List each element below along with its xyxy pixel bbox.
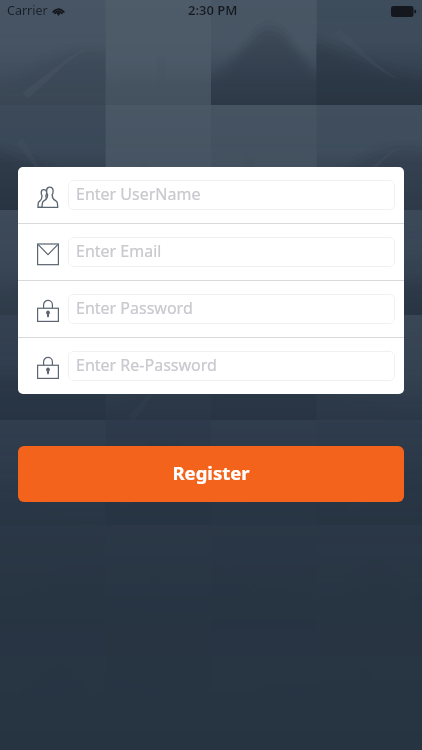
staticText: Enter UserName [76,183,201,205]
button[interactable]: Password [18,281,404,337]
other: Password [37,300,59,322]
staticText: Enter Re-Password [76,354,217,376]
staticText: Enter Password [76,297,193,319]
button[interactable]: Register [18,446,404,502]
button[interactable]: Email [18,224,404,280]
other: UserName [37,186,59,208]
other: Re-Password [37,357,59,379]
staticText: Register [172,460,250,485]
staticText: Carrier [7,2,48,19]
button[interactable]: Re-Password [18,338,404,394]
button[interactable]: UserName [18,167,404,223]
other: Email [37,243,59,265]
staticText: 2:30 PM [188,1,238,19]
staticText: Enter Email [76,240,162,262]
